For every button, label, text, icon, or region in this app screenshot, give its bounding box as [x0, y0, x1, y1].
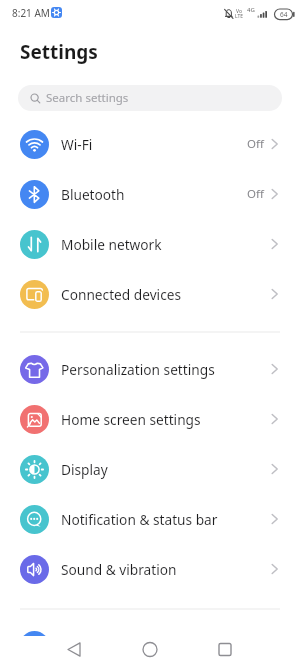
staticText: Wi-Fi	[61, 135, 93, 154]
button[interactable]: Home screen settings	[0, 394, 300, 444]
button[interactable]: Wi-Fi	[0, 119, 300, 169]
staticText: More settings	[61, 636, 150, 655]
staticText: Off	[247, 186, 264, 202]
staticText: LTE	[235, 13, 244, 20]
staticText: Search settings	[46, 90, 129, 106]
button[interactable]: Mobile network	[0, 219, 300, 269]
button[interactable]: More settings	[0, 622, 300, 669]
staticText: 4G	[247, 6, 255, 14]
button[interactable]: Search settings	[18, 85, 282, 111]
staticText: 64	[280, 10, 288, 19]
staticText: Bluetooth	[61, 185, 125, 204]
staticText: Vo	[236, 8, 242, 15]
staticText: Personalization settings	[61, 360, 215, 379]
staticText: Settings	[20, 39, 98, 65]
staticText: Home screen settings	[61, 410, 201, 429]
staticText: Connected devices	[61, 285, 181, 304]
staticText: 8:21 AM	[12, 6, 50, 20]
button[interactable]: Connected devices	[0, 269, 300, 319]
button[interactable]: Notification & status bar	[0, 494, 300, 544]
staticText: Mobile network	[61, 235, 162, 254]
staticText: Display	[61, 460, 108, 479]
button[interactable]: Bluetooth	[0, 169, 300, 219]
button[interactable]: Sound & vibration	[0, 544, 300, 594]
staticText: Sound & vibration	[61, 560, 177, 579]
button[interactable]: Personalization settings	[0, 344, 300, 394]
staticText: Notification & status bar	[61, 510, 218, 529]
staticText: Off	[247, 136, 264, 152]
button[interactable]: Display	[0, 444, 300, 494]
